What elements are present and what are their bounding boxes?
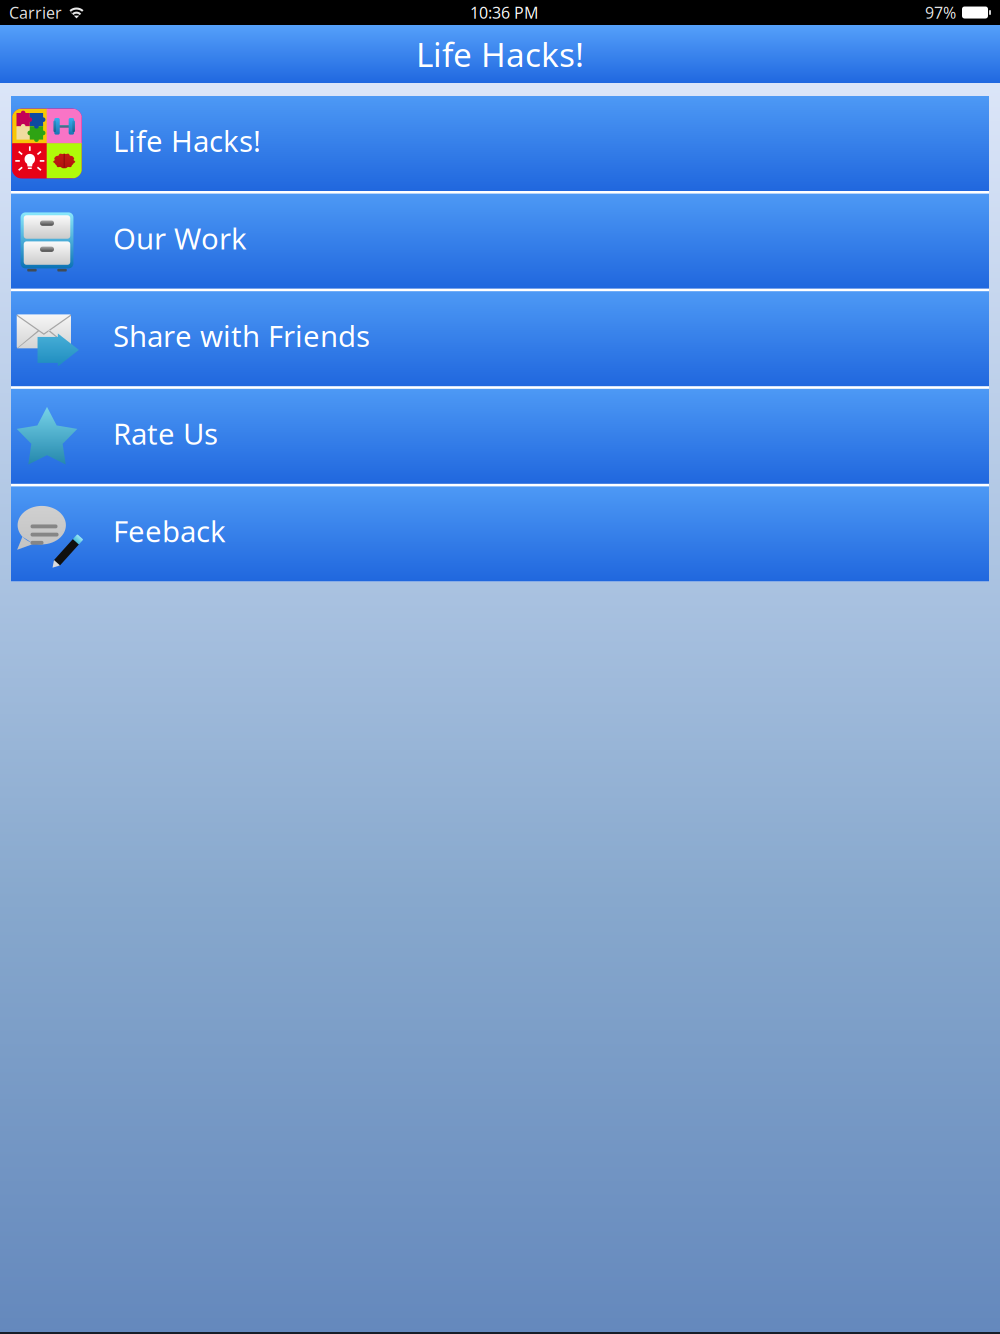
button[interactable]: Our Work <box>11 194 989 289</box>
button[interactable]: Feeback <box>11 486 989 581</box>
button[interactable]: Share with Friends <box>11 291 989 386</box>
staticText: Carrier <box>9 2 62 23</box>
staticText: 97% <box>925 2 956 23</box>
staticText: Rate Us <box>113 414 218 453</box>
button[interactable]: Rate Us <box>11 389 989 484</box>
staticText: 10:36 PM <box>470 2 539 23</box>
button[interactable]: Life Hacks! <box>11 96 989 191</box>
staticText: Our Work <box>113 219 247 258</box>
staticText: Life Hacks! <box>113 121 261 160</box>
staticText: Life Hacks! <box>416 32 584 76</box>
staticText: Feeback <box>113 511 226 550</box>
staticText: Share with Friends <box>113 316 370 355</box>
